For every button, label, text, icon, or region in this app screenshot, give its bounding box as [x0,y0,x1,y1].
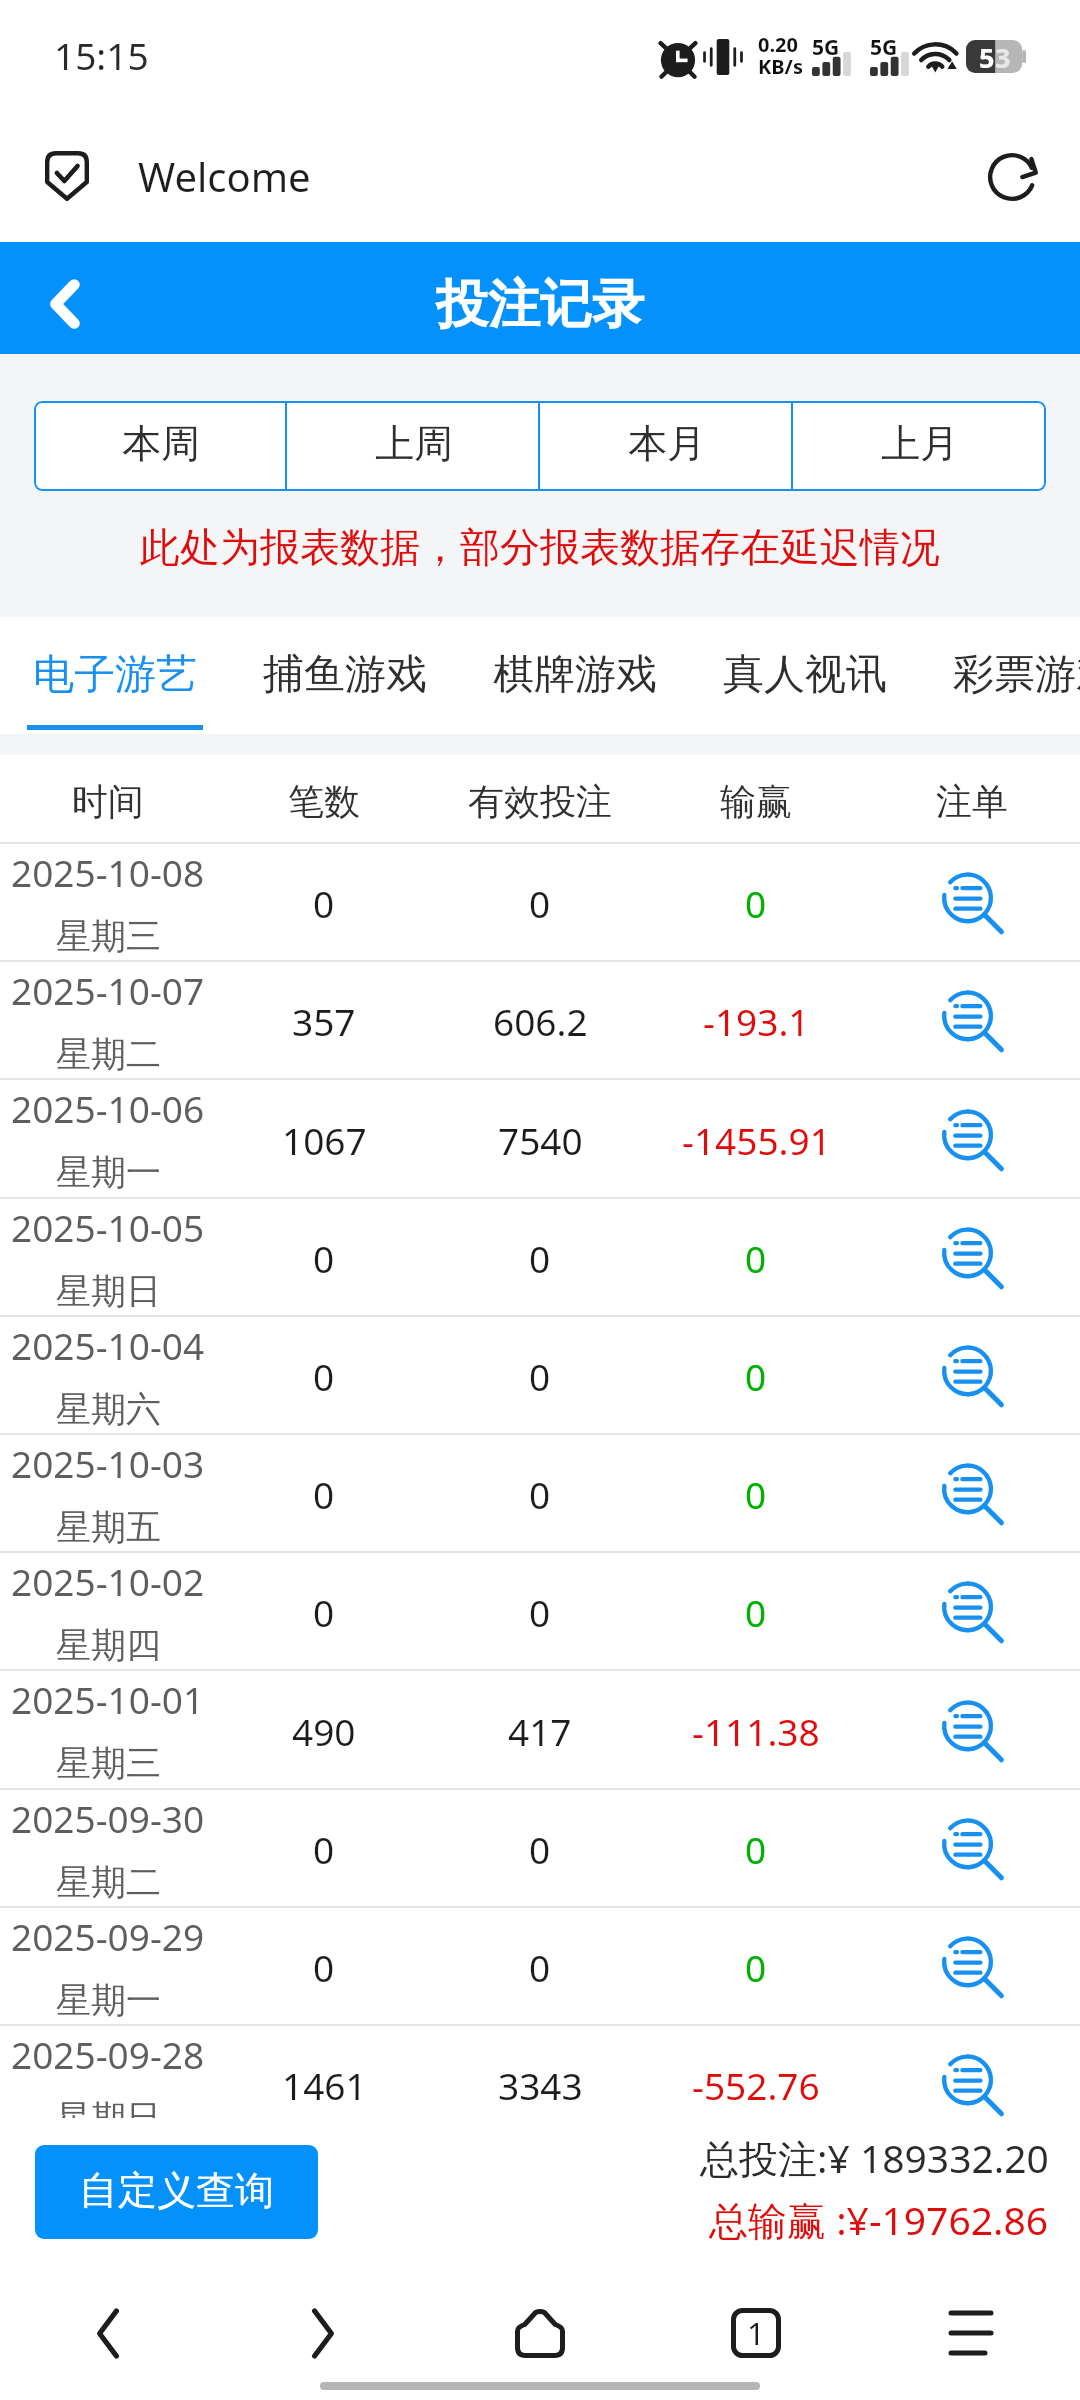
staticText: 星期一 [56,1978,161,2022]
button[interactable]: View bet details [934,1102,1010,1178]
button[interactable]: 2025-10-05 [0,1199,1080,1317]
button[interactable]: View bet details [934,1456,1010,1532]
button[interactable]: 2025-10-06 [0,1080,1080,1199]
staticText: 2025-10-04 [11,1320,205,1370]
button[interactable]: View bet details [934,2047,1010,2118]
staticText: Welcome [138,149,311,203]
staticText: 星期六 [56,1387,161,1431]
staticText: 星期二 [56,1032,161,1076]
staticText: 1461 [282,2060,367,2110]
staticText: 0 [313,1351,335,1401]
button[interactable]: 本周 [34,401,287,491]
staticText: -552.76 [692,2060,820,2110]
staticText: 417 [508,1706,572,1756]
button[interactable]: 2025-09-29 [0,1908,1080,2026]
button[interactable]: View bet details [934,1220,1010,1296]
button[interactable]: Home [515,2308,565,2358]
button[interactable]: 上月 [793,401,1046,491]
staticText: 2025-10-05 [11,1202,205,1252]
staticText: 此处为报表数据，部分报表数据存在延迟情况 [0,522,1080,572]
button[interactable]: View bet details [934,1574,1010,1650]
button[interactable]: 2025-10-03 [0,1435,1080,1553]
button[interactable]: 2025-10-01 [0,1671,1080,1790]
button[interactable]: 2025-09-28 [0,2026,1080,2118]
button[interactable]: View bet details [934,1693,1010,1769]
staticText: 笔数 [288,779,360,824]
staticText: KB/s [758,53,803,80]
button[interactable]: 彩票游戏 [920,617,1080,734]
staticText: 棋牌游戏 [493,649,657,701]
staticText: 0 [529,878,551,928]
staticText: 0 [313,878,335,928]
staticText: 星期一 [56,1150,161,1194]
staticText: 0 [745,1233,767,1283]
staticText: 2025-10-03 [11,1438,205,1488]
button[interactable]: 2025-10-04 [0,1317,1080,1435]
staticText: 1067 [282,1115,367,1165]
staticText: 1 [747,2312,765,2354]
staticText: 真人视讯 [723,649,887,701]
staticText: 0 [313,1587,335,1637]
button[interactable]: Menu [946,2301,996,2351]
button[interactable]: View bet details [934,1811,1010,1887]
staticText: 上周 [375,419,453,468]
staticText: -111.38 [692,1706,820,1756]
button[interactable]: Back [76,2302,140,2364]
staticText: 2025-10-06 [11,1083,205,1133]
staticText: 本月 [628,419,706,468]
staticText: 彩票游戏 [953,649,1080,701]
staticText: 星期四 [56,1623,161,1667]
button[interactable]: 2025-10-02 [0,1553,1080,1671]
staticText: 5 [979,39,995,72]
button[interactable]: View bet details [934,865,1010,941]
button[interactable]: Back [24,258,104,338]
staticText: 0 [313,1942,335,1992]
staticText: -1455.91 [682,1115,831,1165]
staticText: 星期日 [56,1269,161,1313]
staticText: 5G [870,33,898,62]
staticText: 2025-10-02 [11,1556,205,1606]
staticText: 0 [529,1469,551,1519]
staticText: 捕鱼游戏 [263,649,427,701]
button[interactable]: 棋牌游戏 [460,617,690,734]
button[interactable]: 真人视讯 [690,617,920,734]
staticText: 0 [745,1351,767,1401]
button[interactable]: 电子游艺 [0,617,230,734]
staticText: 2025-09-29 [11,1911,205,1961]
button[interactable]: View bet details [934,983,1010,1059]
staticText: 0 [529,1351,551,1401]
button[interactable]: 本月 [540,401,793,491]
button[interactable]: 自定义查询 [35,2145,318,2239]
staticText: 0 [529,1942,551,1992]
button[interactable]: Tabs [731,2308,781,2358]
staticText: 0 [313,1824,335,1874]
staticText: 输赢 [720,779,792,824]
button[interactable]: 上周 [287,401,540,491]
staticText: 星期三 [56,1741,161,1785]
staticText: 2025-10-01 [11,1674,205,1724]
staticText: 0 [745,878,767,928]
staticText: 星期二 [56,1860,161,1904]
button[interactable]: 2025-09-30 [0,1790,1080,1908]
button[interactable]: View bet details [934,1338,1010,1414]
staticText: 357 [292,996,356,1046]
staticText: 0 [745,1942,767,1992]
staticText: 星期三 [56,914,161,958]
staticText: 总投注:¥ 189332.20 [700,2131,1049,2184]
staticText: 7540 [498,1115,583,1165]
staticText: 电子游艺 [33,649,197,701]
staticText: 3 [995,39,1011,72]
button[interactable]: View bet details [934,1929,1010,2005]
staticText: 490 [292,1706,356,1756]
button[interactable]: Refresh [973,137,1051,215]
button[interactable]: 2025-10-08 [0,844,1080,962]
staticText: 0 [529,1824,551,1874]
staticText: 2025-09-30 [11,1793,205,1843]
staticText: 0.20 [758,31,798,58]
staticText: 0 [745,1824,767,1874]
staticText: 0 [529,1233,551,1283]
button[interactable]: 2025-10-07 [0,962,1080,1080]
button[interactable]: Forward [291,2302,355,2364]
button[interactable]: 捕鱼游戏 [230,617,460,734]
staticText: 本周 [122,419,200,468]
